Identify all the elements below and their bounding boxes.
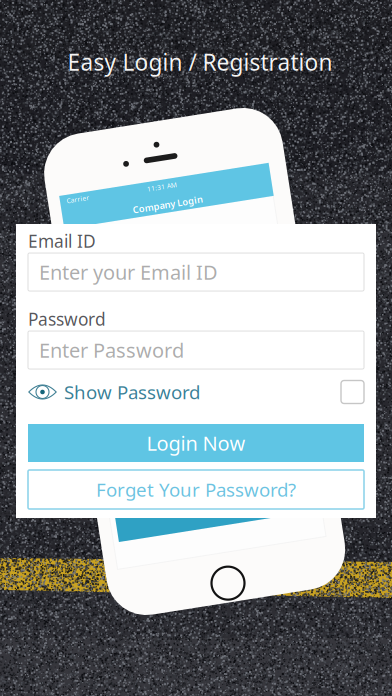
button[interactable]: Toggle show password xyxy=(341,380,364,403)
staticText: Privacy Policy xyxy=(187,482,237,493)
button[interactable]: Show Password xyxy=(28,380,200,403)
staticText: Forget Your Password? xyxy=(96,477,296,502)
staticText: 11:31 AM xyxy=(147,182,177,191)
staticText: Easy Login / Registration xyxy=(67,47,332,77)
staticText: Company Login xyxy=(132,198,203,211)
button[interactable]: Login Now xyxy=(28,424,364,462)
staticText: Show Password xyxy=(64,380,200,404)
staticText: Password xyxy=(28,307,106,330)
button[interactable]: Forget Your Password? xyxy=(28,470,364,509)
staticText: Login Now xyxy=(146,430,245,456)
staticText: Enter your Email ID xyxy=(39,259,218,285)
staticText: Enter Password xyxy=(39,337,184,363)
staticText: Email ID xyxy=(28,229,96,252)
staticText: Carrier xyxy=(66,195,89,204)
